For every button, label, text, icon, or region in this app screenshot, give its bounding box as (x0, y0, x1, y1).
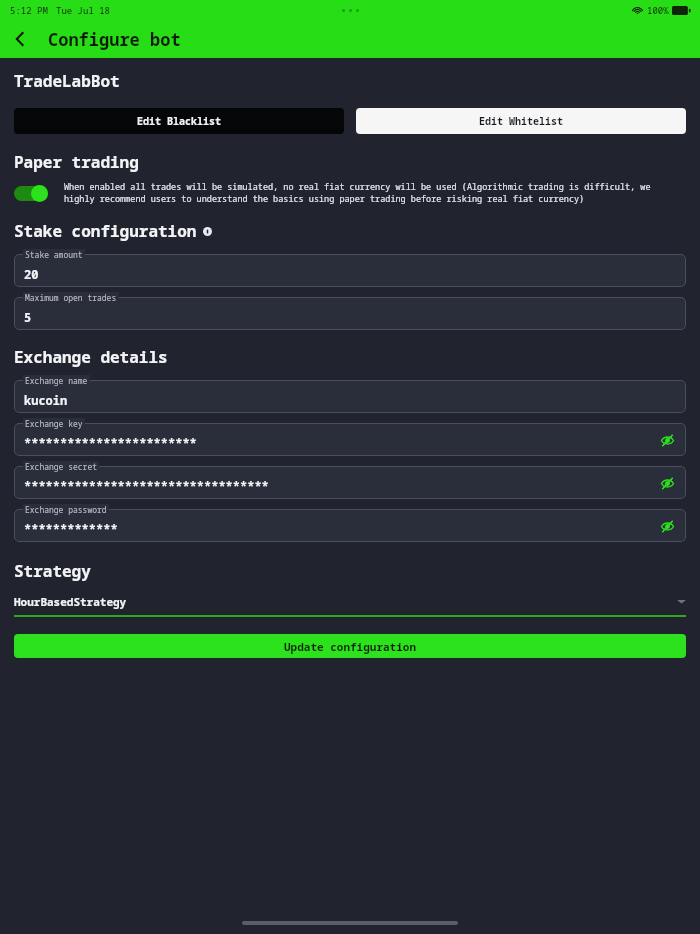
staticText: Paper trading (14, 151, 139, 173)
button[interactable]: 20 (14, 254, 686, 287)
staticText: Edit Whitelist (479, 114, 563, 128)
staticText: 5:12 PM (10, 4, 48, 16)
button[interactable]: HourBasedStrategy (14, 590, 686, 617)
staticText: When enabled all trades will be simulate… (64, 181, 686, 205)
staticText: Exchange details (14, 346, 168, 368)
staticText: Update configuration (284, 639, 416, 654)
staticText: TradeLabBot (14, 70, 120, 92)
staticText: kucoin (24, 392, 68, 408)
button[interactable]: kucoin (14, 380, 686, 413)
staticText: HourBasedStrategy (14, 594, 127, 609)
staticText: Maximum open trades (25, 292, 117, 303)
staticText: Exchange secret (25, 461, 97, 472)
button[interactable]: 5 (14, 297, 686, 330)
staticText: ********************************** (24, 478, 269, 494)
button[interactable]: ************* (14, 509, 686, 542)
staticText: Stake amount (25, 249, 83, 260)
staticText: Strategy (14, 560, 91, 582)
staticText: Edit Blacklist (137, 114, 221, 128)
staticText: Exchange name (25, 375, 88, 386)
button[interactable]: ************************ (14, 423, 686, 456)
button[interactable]: Toggle visibility (656, 515, 678, 537)
staticText: ************* (24, 521, 118, 537)
button[interactable]: Edit Whitelist (356, 108, 686, 134)
staticText: 20 (24, 266, 39, 282)
staticText: Exchange key (25, 418, 83, 429)
staticText: ************************ (24, 435, 197, 451)
staticText: Exchange password (25, 504, 107, 515)
button[interactable]: ********************************** (14, 466, 686, 499)
button[interactable]: Toggle visibility (656, 472, 678, 494)
staticText: Configure bot (48, 28, 181, 51)
button[interactable]: Update configuration (14, 634, 686, 658)
button[interactable]: Paper trading toggle (14, 180, 60, 206)
staticText: Tue Jul 18 (56, 4, 111, 16)
button[interactable]: Back (0, 20, 40, 58)
button[interactable]: Toggle visibility (656, 429, 678, 451)
staticText: Stake configuration (14, 220, 197, 242)
staticText: 100% (647, 4, 669, 16)
staticText: 5 (24, 309, 32, 325)
button[interactable]: Edit Blacklist (14, 108, 344, 134)
